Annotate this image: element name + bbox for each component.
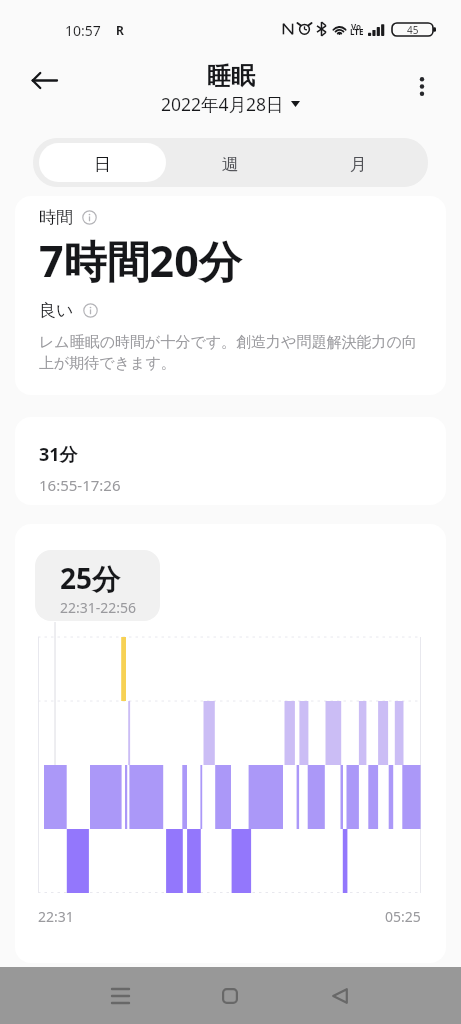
button[interactable]: More options	[400, 64, 444, 108]
staticText: 22:31-22:56	[60, 598, 137, 617]
staticText: 睡眠	[207, 61, 255, 91]
button[interactable]: Recent apps	[96, 972, 144, 1020]
button[interactable]: Back	[316, 972, 364, 1020]
staticText: 25分	[60, 559, 121, 597]
staticText: レム睡眠の時間が十分です。創造力や問題解決能力の向上が期待できます。	[39, 333, 426, 372]
staticText: 16:55-17:26	[39, 475, 121, 495]
staticText: 週	[222, 154, 239, 175]
staticText: 22:31	[38, 907, 74, 926]
button[interactable]: 31分	[15, 417, 446, 505]
button[interactable]: 2022年4月28日	[161, 92, 300, 116]
staticText: 日	[94, 154, 111, 175]
staticText: R	[116, 22, 124, 38]
button[interactable]: 週	[166, 143, 294, 182]
button[interactable]: 時間	[15, 196, 446, 395]
button[interactable]: 日	[39, 143, 166, 182]
staticText: 7時間20分	[39, 231, 242, 290]
staticText: Vo	[351, 21, 362, 32]
button[interactable]: 25分	[15, 524, 446, 963]
staticText: 31分	[39, 442, 78, 467]
button[interactable]: Home	[206, 972, 254, 1020]
staticText: 時間	[39, 207, 73, 228]
staticText: 良い	[39, 300, 74, 321]
staticText: 45	[407, 23, 419, 36]
button[interactable]: Back	[22, 58, 66, 102]
staticText: 2022年4月28日	[161, 92, 284, 116]
staticText: 05:25	[385, 907, 421, 926]
button[interactable]: 月	[294, 143, 422, 182]
staticText: LTE	[350, 26, 364, 37]
staticText: 10:57	[65, 21, 101, 40]
staticText: 月	[350, 154, 367, 175]
